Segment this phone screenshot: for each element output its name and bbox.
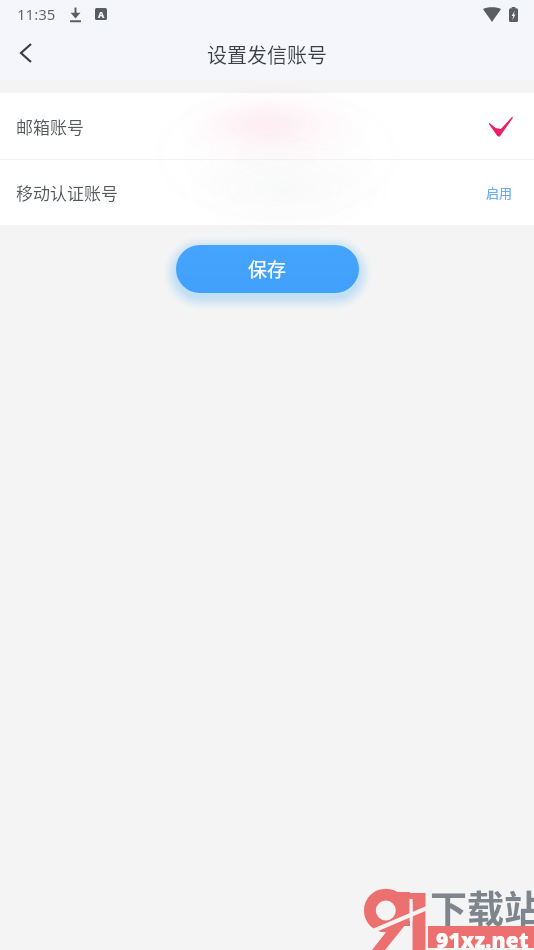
staticText: 11:35 xyxy=(17,4,56,24)
staticText: 91xz.net xyxy=(436,926,529,948)
staticText: 启用 xyxy=(486,183,513,202)
staticText: 移动认证账号 xyxy=(16,180,118,205)
button[interactable]: 移动认证账号 xyxy=(0,160,534,225)
staticText: 下载站 xyxy=(430,880,534,934)
staticText: 邮箱账号 xyxy=(16,114,84,139)
staticText: 保存 xyxy=(248,255,287,283)
button[interactable]: 邮箱账号 xyxy=(0,93,534,159)
button[interactable]: 保存 xyxy=(176,245,359,293)
staticText: 设置发信账号 xyxy=(207,40,327,69)
staticText: A xyxy=(98,8,105,20)
button[interactable]: Back xyxy=(3,30,49,76)
